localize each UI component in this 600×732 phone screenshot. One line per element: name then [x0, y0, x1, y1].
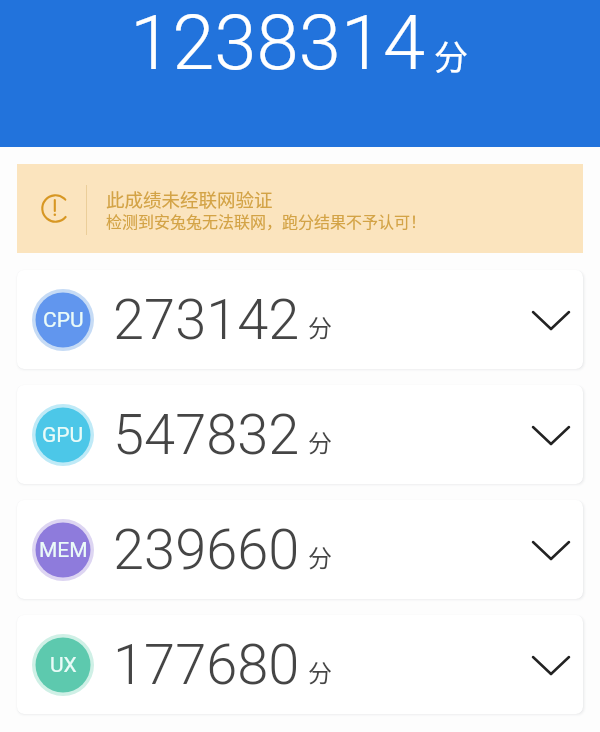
button[interactable]: CPU: [17, 270, 583, 369]
staticText: 547832: [113, 402, 300, 468]
button[interactable]: Expand GPU details: [522, 406, 580, 464]
staticText: CPU: [43, 308, 84, 333]
button[interactable]: Expand CPU details: [522, 291, 580, 349]
staticText: UX: [50, 653, 77, 678]
button[interactable]: 此成绩未经联网验证: [17, 164, 583, 253]
staticText: 177680: [113, 632, 300, 698]
button[interactable]: Expand UX details: [522, 636, 580, 694]
staticText: 此成绩未经联网验证: [106, 186, 273, 213]
button[interactable]: MEM: [17, 500, 583, 599]
staticText: MEM: [39, 538, 88, 563]
staticText: 分: [434, 31, 468, 80]
staticText: 分: [308, 654, 332, 689]
staticText: 检测到安兔兔无法联网，跑分结果不予认可！: [106, 209, 427, 232]
staticText: GPU: [42, 423, 84, 448]
button[interactable]: UX: [17, 615, 583, 714]
staticText: 273142: [113, 287, 300, 353]
staticText: 分: [308, 539, 332, 574]
staticText: 分: [308, 424, 332, 459]
staticText: 分: [308, 309, 332, 344]
staticText: 239660: [113, 517, 300, 583]
button[interactable]: Expand MEM details: [522, 521, 580, 579]
staticText: 1238314: [130, 0, 426, 87]
button[interactable]: GPU: [17, 385, 583, 484]
